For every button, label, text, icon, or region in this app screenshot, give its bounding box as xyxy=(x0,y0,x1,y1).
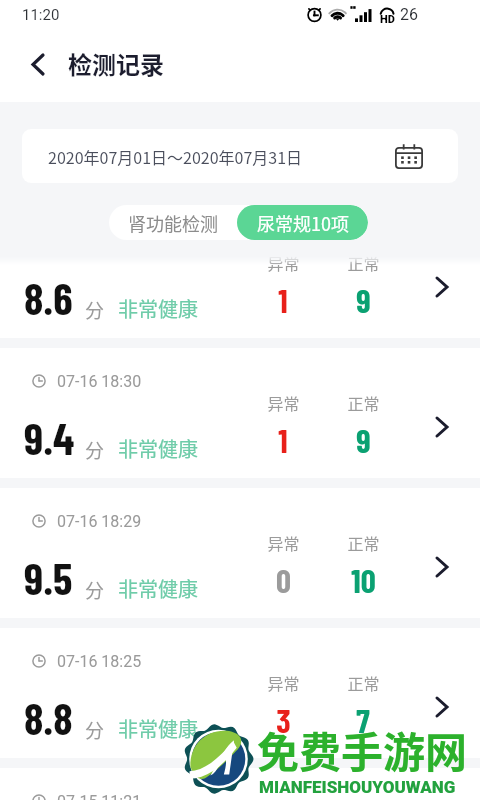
staticText: 7 xyxy=(356,700,370,740)
staticText: 异常 xyxy=(267,671,300,694)
staticText: 9.5 xyxy=(24,551,73,604)
staticText: 0 xyxy=(276,560,291,600)
button[interactable]: 07-16 18:30 xyxy=(0,348,480,478)
staticText: 11:20 xyxy=(22,6,60,24)
staticText: 免费手游网 xyxy=(257,719,468,780)
staticText: 分 xyxy=(85,296,105,324)
staticText: 非常健康 xyxy=(118,294,198,323)
staticText: 分 xyxy=(85,436,105,464)
staticText: 非常健康 xyxy=(118,434,198,463)
staticText: 8.6 xyxy=(24,271,73,324)
staticText: 9 xyxy=(356,280,371,320)
button[interactable]: 07-15 11:21 xyxy=(0,768,480,800)
staticText: 26 xyxy=(400,5,418,24)
button[interactable]: Back xyxy=(14,41,62,87)
other: Open detail xyxy=(424,269,460,305)
staticText: 正常 xyxy=(347,256,380,274)
staticText: 07-16 18:29 xyxy=(57,512,142,531)
staticText: 肾功能检测 xyxy=(128,210,218,236)
staticText: 正常 xyxy=(347,391,380,414)
staticText: 8.8 xyxy=(24,691,73,744)
staticText: 分 xyxy=(85,716,105,744)
staticText: 3 xyxy=(276,700,291,740)
button[interactable]: 07-16 18:29 xyxy=(0,488,480,618)
staticText: 非常健康 xyxy=(118,714,198,743)
other: Open detail xyxy=(424,689,460,725)
button[interactable]: 07-16 18:31 xyxy=(0,256,480,338)
button[interactable]: 07-16 18:25 xyxy=(0,628,480,758)
staticText: 异常 xyxy=(267,531,300,554)
other: Select date range xyxy=(394,141,424,171)
button[interactable]: 肾功能检测 xyxy=(109,205,237,240)
staticText: HD xyxy=(380,13,395,26)
staticText: 异常 xyxy=(267,256,300,274)
staticText: 1 xyxy=(278,280,288,320)
staticText: 9 xyxy=(356,420,371,460)
staticText: 分 xyxy=(85,576,105,604)
staticText: 尿常规10项 xyxy=(257,210,349,236)
button[interactable]: 尿常规10项 xyxy=(237,205,368,240)
staticText: 异常 xyxy=(267,391,300,414)
staticText: 07-15 11:21 xyxy=(57,792,142,800)
staticText: 9.4 xyxy=(24,411,75,464)
staticText: 1 xyxy=(278,420,288,460)
staticText: 非常健康 xyxy=(118,574,198,603)
staticText: 10 xyxy=(351,560,376,600)
other: Open detail xyxy=(424,549,460,585)
staticText: 07-16 18:30 xyxy=(57,372,142,391)
staticText: 正常 xyxy=(347,671,380,694)
other: Open detail xyxy=(424,409,460,445)
staticText: MIANFEISHOUYOUWANG xyxy=(259,777,456,797)
staticText: 2020年07月01日～2020年07月31日 xyxy=(48,145,303,168)
staticText: 07-16 18:25 xyxy=(57,652,142,671)
button[interactable]: 2020年07月01日～2020年07月31日 xyxy=(22,129,458,183)
staticText: 检测记录 xyxy=(68,46,164,81)
staticText: 正常 xyxy=(347,531,380,554)
